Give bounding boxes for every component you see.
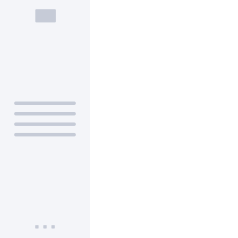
button[interactable]: First tab xyxy=(35,225,39,228)
button[interactable]: Title xyxy=(0,0,90,22)
button[interactable]: Third tab xyxy=(51,225,55,228)
button[interactable]: Second tab xyxy=(43,225,47,228)
